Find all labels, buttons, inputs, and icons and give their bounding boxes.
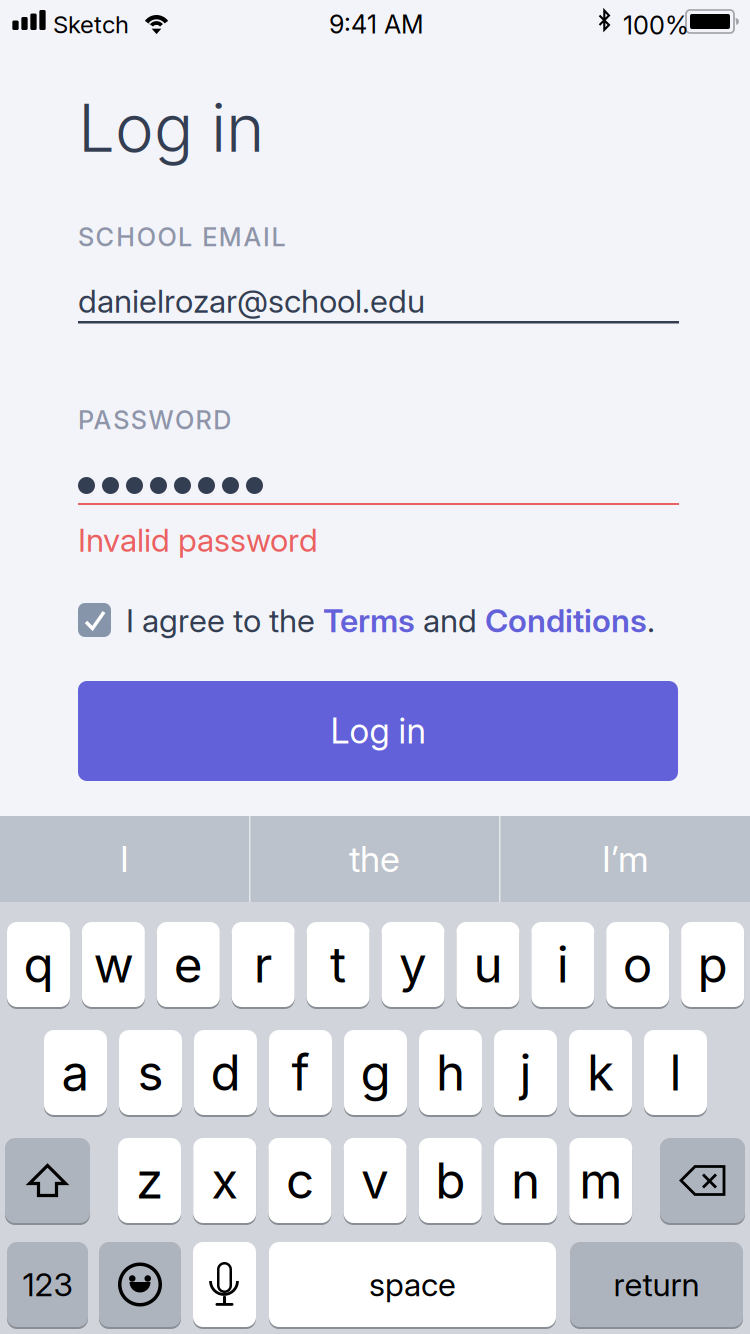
staticText: 123	[22, 1265, 72, 1304]
staticText: and	[415, 601, 485, 640]
button[interactable]: a	[44, 1030, 107, 1117]
button[interactable]: t	[307, 922, 370, 1009]
button[interactable]: p	[681, 922, 744, 1009]
staticText: i	[557, 935, 569, 994]
staticText: PASSWORD	[78, 405, 231, 435]
button[interactable]: I	[0, 816, 249, 902]
staticText: Sketch	[53, 10, 129, 39]
button[interactable]: j	[494, 1030, 557, 1117]
button[interactable]: k	[569, 1030, 632, 1117]
button[interactable]: x	[193, 1138, 256, 1225]
staticText: d	[210, 1043, 240, 1102]
button[interactable]: f	[269, 1030, 332, 1117]
staticText: Conditions	[485, 601, 647, 640]
staticText: 100%	[623, 10, 689, 41]
staticText: u	[473, 935, 502, 994]
staticText: s	[137, 1043, 163, 1102]
button[interactable]: d	[194, 1030, 257, 1117]
button[interactable]: c	[268, 1138, 331, 1225]
button[interactable]: m	[569, 1138, 632, 1225]
staticText: x	[211, 1151, 238, 1210]
staticText: t	[330, 935, 346, 994]
button[interactable]: I’m	[501, 816, 750, 902]
staticText: o	[623, 935, 653, 994]
button[interactable]: r	[232, 922, 295, 1009]
button[interactable]: space	[269, 1242, 556, 1329]
button[interactable]: h	[419, 1030, 482, 1117]
button[interactable]: i	[531, 922, 594, 1009]
button[interactable]: b	[419, 1138, 482, 1225]
button[interactable]: q	[7, 922, 70, 1009]
staticText: SCHOOL EMAIL	[78, 222, 286, 252]
staticText: g	[360, 1043, 390, 1102]
staticText: Log in	[78, 88, 264, 167]
button[interactable]: w	[82, 922, 145, 1009]
staticText: b	[435, 1151, 465, 1210]
button[interactable]: e	[157, 922, 220, 1009]
button[interactable]: Delete	[660, 1138, 745, 1225]
staticText: j	[519, 1043, 531, 1102]
staticText: k	[587, 1043, 614, 1102]
button[interactable]: g	[344, 1030, 407, 1117]
staticText: l	[669, 1043, 681, 1102]
staticText: Invalid password	[78, 521, 318, 559]
button[interactable]: Log in	[78, 681, 678, 781]
button[interactable]: v	[344, 1138, 407, 1225]
staticText: danielrozar@school.edu	[78, 282, 425, 320]
button[interactable]: the	[250, 816, 499, 902]
staticText: I	[120, 837, 129, 881]
button[interactable]: 123	[7, 1242, 88, 1329]
staticText: r	[254, 935, 273, 994]
staticText: Terms	[323, 601, 415, 640]
staticText: q	[23, 935, 53, 994]
button[interactable]: s	[119, 1030, 182, 1117]
button[interactable]: z	[118, 1138, 181, 1225]
staticText: I’m	[602, 837, 649, 881]
staticText: return	[613, 1265, 699, 1304]
staticText: y	[399, 935, 427, 994]
staticText: p	[698, 935, 728, 994]
staticText: m	[579, 1151, 622, 1210]
staticText: 9:41 AM	[329, 9, 424, 40]
staticText: space	[369, 1265, 456, 1304]
staticText: h	[436, 1043, 465, 1102]
staticText: z	[136, 1151, 163, 1210]
button[interactable]: n	[494, 1138, 557, 1225]
staticText: a	[61, 1043, 89, 1102]
staticText: the	[349, 837, 400, 881]
staticText: n	[511, 1151, 540, 1210]
button[interactable]: return	[570, 1242, 743, 1329]
button[interactable]: Shift	[5, 1138, 90, 1225]
staticText: e	[174, 935, 203, 994]
button[interactable]: Dictate	[193, 1242, 256, 1329]
staticText: .	[647, 601, 655, 640]
button[interactable]: y	[381, 922, 444, 1009]
button[interactable]: u	[456, 922, 519, 1009]
staticText: I agree to the	[126, 601, 323, 640]
button[interactable]: Emoji	[99, 1242, 181, 1329]
staticText: f	[291, 1043, 309, 1102]
button[interactable]: I agree to the	[78, 603, 678, 638]
staticText: w	[93, 935, 133, 994]
staticText: Log in	[330, 710, 425, 752]
button[interactable]: o	[606, 922, 669, 1009]
staticText: v	[361, 1151, 389, 1210]
staticText: c	[286, 1151, 314, 1210]
button[interactable]: l	[644, 1030, 707, 1117]
